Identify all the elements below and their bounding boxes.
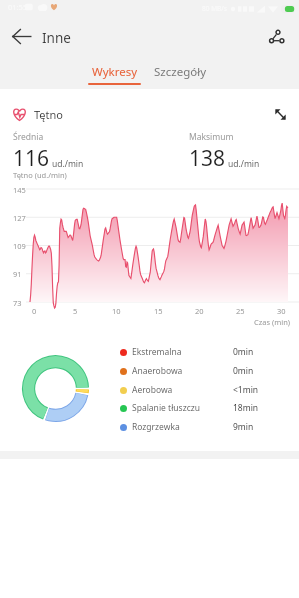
- button[interactable]: Wykresy: [86, 56, 143, 89]
- staticText: 5: [73, 306, 78, 316]
- staticText: 145: [13, 185, 26, 195]
- staticText: ud./min: [52, 158, 84, 170]
- staticText: Wykresy: [92, 64, 138, 80]
- button[interactable]: Rozgrzewka: [118, 419, 299, 435]
- staticText: 25: [236, 306, 245, 316]
- staticText: 109: [13, 241, 26, 251]
- staticText: 91: [13, 269, 22, 279]
- button[interactable]: Share: [258, 18, 294, 54]
- button[interactable]: Expand: [267, 101, 293, 127]
- staticText: Aerobowa: [132, 384, 233, 396]
- staticText: Inne: [42, 29, 71, 47]
- staticText: 9min: [233, 421, 254, 433]
- staticText: 30: [277, 306, 286, 316]
- staticText: Spalanie tłuszczu: [132, 402, 233, 414]
- staticText: 10: [112, 306, 121, 316]
- button[interactable]: Ekstremalna: [118, 344, 299, 360]
- button[interactable]: Szczegóły: [148, 56, 211, 89]
- staticText: 0min: [233, 365, 254, 377]
- button[interactable]: Spalanie tłuszczu: [118, 400, 299, 416]
- staticText: ud./min: [228, 158, 260, 170]
- staticText: 127: [13, 213, 26, 223]
- staticText: Rozgrzewka: [132, 421, 233, 433]
- staticText: Ekstremalna: [132, 346, 233, 358]
- button[interactable]: Back: [3, 18, 39, 54]
- staticText: 0: [32, 306, 37, 316]
- staticText: 15: [154, 306, 163, 316]
- staticText: Maksimum: [189, 131, 234, 143]
- staticText: 116: [13, 144, 50, 173]
- staticText: Szczegóły: [154, 64, 206, 80]
- staticText: Anaerobowa: [132, 365, 233, 377]
- button[interactable]: Anaerobowa: [118, 363, 299, 379]
- staticText: 138: [189, 144, 226, 173]
- staticText: Tętno: [34, 107, 63, 122]
- staticText: Tętno (ud./min): [13, 170, 67, 180]
- staticText: 18min: [233, 402, 259, 414]
- button[interactable]: Aerobowa: [118, 382, 299, 398]
- staticText: Czas (min): [254, 317, 291, 327]
- staticText: Średnia: [13, 131, 44, 143]
- staticText: 0min: [233, 346, 254, 358]
- staticText: 20: [195, 306, 204, 316]
- staticText: 73: [13, 298, 22, 308]
- staticText: <1min: [233, 384, 259, 396]
